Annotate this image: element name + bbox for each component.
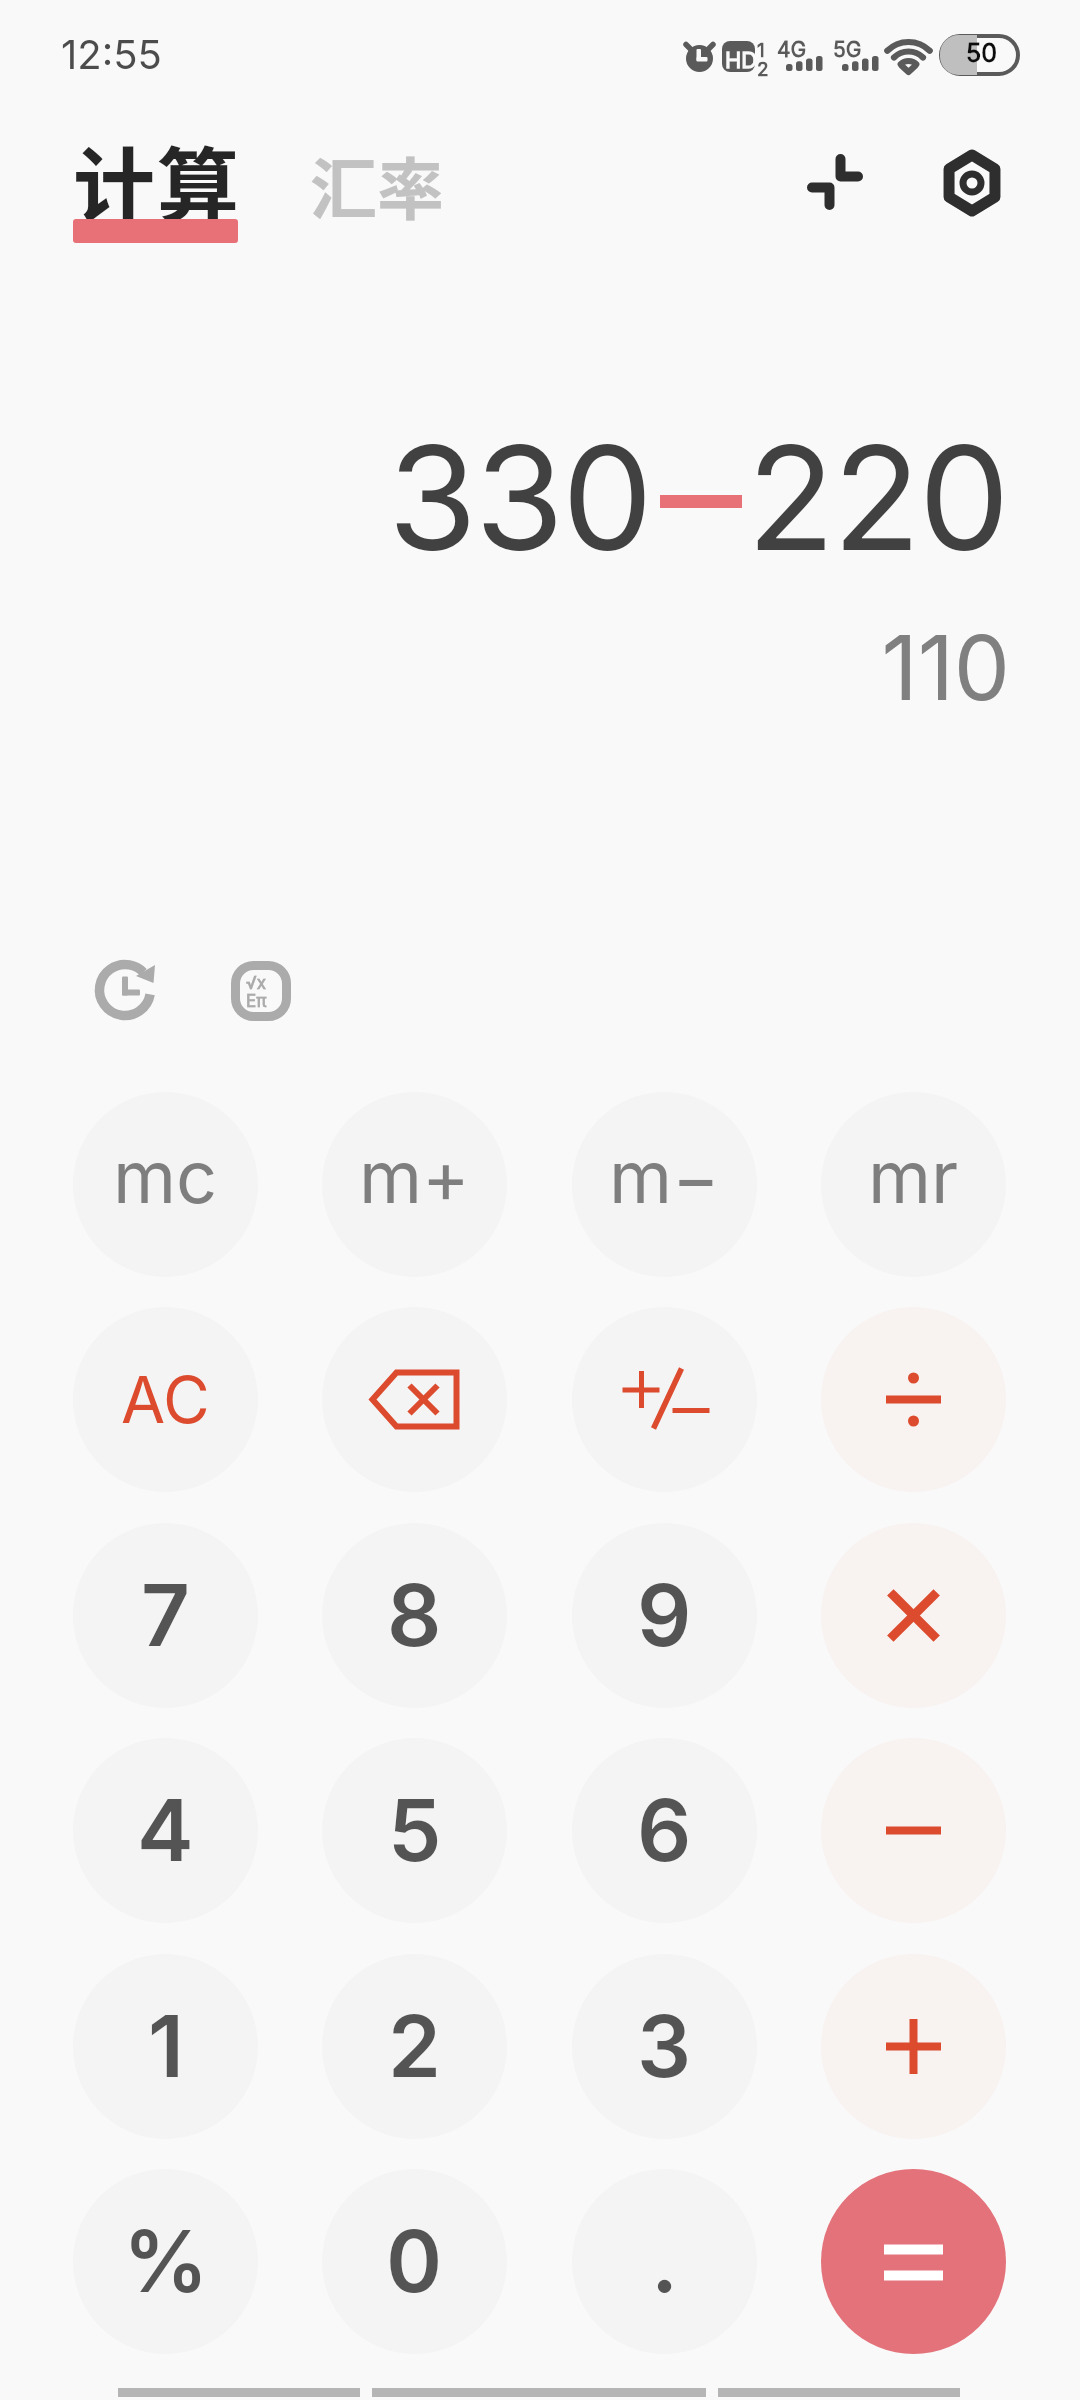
button[interactable]: .: [572, 2169, 757, 2354]
button[interactable]: 3: [572, 1954, 757, 2139]
button[interactable]: 2: [322, 1954, 507, 2139]
staticText: 12:55: [61, 30, 162, 78]
button[interactable]: AC: [73, 1307, 258, 1492]
button[interactable]: 5: [322, 1738, 507, 1923]
button[interactable]: History: [95, 960, 159, 1024]
staticText: √x: [246, 973, 266, 994]
staticText: 9: [637, 1564, 692, 1667]
button[interactable]: 4: [73, 1738, 258, 1923]
button[interactable]: Settings: [936, 147, 1008, 219]
button[interactable]: 6: [572, 1738, 757, 1923]
button[interactable]: [572, 1307, 757, 1492]
staticText: mc: [113, 1133, 218, 1220]
button[interactable]: m+: [322, 1092, 507, 1277]
staticText: 50: [966, 38, 997, 68]
staticText: 4G: [777, 37, 807, 62]
staticText: m+: [359, 1133, 470, 1220]
staticText: 2: [388, 1995, 441, 2098]
button[interactable]: m−: [572, 1092, 757, 1277]
staticText: 1: [148, 1995, 184, 2098]
button[interactable]: Multiply: [821, 1523, 1006, 1708]
staticText: 5: [388, 1779, 442, 1882]
staticText: .: [651, 2210, 679, 2313]
button[interactable]: 1: [73, 1954, 258, 2139]
button[interactable]: %: [73, 2169, 258, 2354]
staticText: mr: [868, 1133, 959, 1220]
staticText: 7: [141, 1564, 190, 1667]
button[interactable]: mr: [821, 1092, 1006, 1277]
staticText: Eπ: [246, 991, 267, 1012]
button[interactable]: mc: [73, 1092, 258, 1277]
staticText: 330: [388, 410, 651, 584]
staticText: 3: [637, 1995, 692, 2098]
staticText: 8: [387, 1564, 442, 1667]
staticText: %: [123, 2210, 209, 2313]
button[interactable]: Plus: [821, 1954, 1006, 2139]
button[interactable]: 汇率: [310, 136, 444, 233]
staticText: 5G: [833, 37, 862, 62]
staticText: 0: [386, 2210, 443, 2313]
button[interactable]: Divide: [821, 1307, 1006, 1492]
staticText: 6: [637, 1779, 692, 1882]
staticText: AC: [121, 1361, 210, 1438]
staticText: 220: [747, 410, 1008, 584]
button[interactable]: Scientific calculator: [231, 961, 291, 1021]
button[interactable]: Delete: [322, 1307, 507, 1492]
button[interactable]: 7: [73, 1523, 258, 1708]
staticText: 计算: [73, 121, 242, 240]
staticText: 1: [757, 39, 765, 62]
staticText: HD: [725, 47, 758, 74]
button[interactable]: 8: [322, 1523, 507, 1708]
button[interactable]: 计算: [73, 104, 249, 250]
staticText: 4: [137, 1779, 194, 1882]
button[interactable]: Equals: [821, 2169, 1006, 2354]
button[interactable]: Minus: [821, 1738, 1006, 1923]
staticText: m−: [609, 1133, 720, 1220]
button[interactable]: Collapse keyboard: [800, 148, 870, 218]
staticText: 110: [0, 614, 1010, 722]
button[interactable]: 0: [322, 2169, 507, 2354]
staticText: 2: [757, 58, 769, 81]
button[interactable]: 9: [572, 1523, 757, 1708]
